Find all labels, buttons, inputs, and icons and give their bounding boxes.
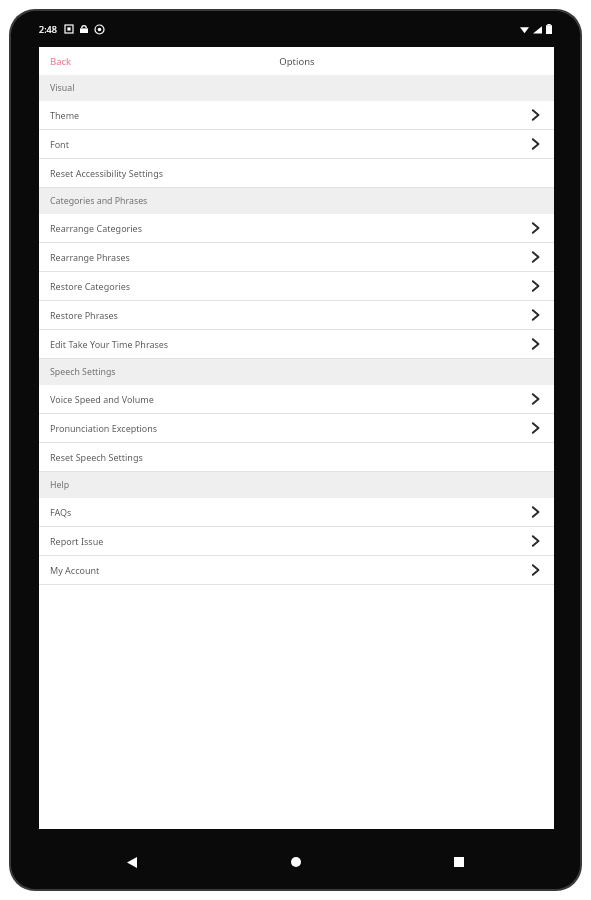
button[interactable]: Font [39,130,554,158]
staticText: 2:48 [39,23,57,35]
other: Open Voice Speed and Volume [532,393,539,405]
button[interactable]: My Account [39,556,554,584]
other: Open My Account [532,564,539,576]
other: Open Font [532,138,539,150]
staticText: Options [279,55,315,68]
staticText: Restore Phrases [50,309,118,321]
staticText: My Account [50,564,100,576]
button[interactable]: Rearrange Categories [39,214,554,242]
staticText: Speech Settings [50,366,116,378]
button[interactable]: Home [283,849,309,875]
button[interactable]: FAQs [39,498,554,526]
button[interactable]: Restore Phrases [39,301,554,329]
button[interactable]: Theme [39,101,554,129]
staticText: Voice Speed and Volume [50,393,154,405]
button[interactable]: Back [39,51,82,72]
staticText: Report Issue [50,535,104,547]
other: Open Restore Categories [532,280,539,292]
other: Open Edit Take Your Time Phrases [532,338,539,350]
staticText: Font [50,138,69,150]
button[interactable]: Back [119,849,145,875]
other: Open Pronunciation Exceptions [532,422,539,434]
staticText: Reset Accessibility Settings [50,167,163,179]
staticText: Pronunciation Exceptions [50,422,158,434]
button[interactable]: Voice Speed and Volume [39,385,554,413]
button[interactable]: Rearrange Phrases [39,243,554,271]
other: Open Theme [532,109,539,121]
other: Open FAQs [532,506,539,518]
other: Open Restore Phrases [532,309,539,321]
other: Open Rearrange Categories [532,222,539,234]
staticText: Reset Speech Settings [50,451,143,463]
staticText: Rearrange Categories [50,222,143,234]
button[interactable]: Reset Speech Settings [39,443,554,471]
staticText: Edit Take Your Time Phrases [50,338,169,350]
button[interactable]: Edit Take Your Time Phrases [39,330,554,358]
staticText: Theme [50,109,80,121]
button[interactable]: Reset Accessibility Settings [39,159,554,187]
staticText: Rearrange Phrases [50,251,130,263]
other: Open Report Issue [532,535,539,547]
button[interactable]: Pronunciation Exceptions [39,414,554,442]
staticText: Visual [50,82,75,94]
staticText: FAQs [50,506,72,518]
staticText: Back [50,55,72,68]
staticText: Restore Categories [50,280,131,292]
other: Open Rearrange Phrases [532,251,539,263]
button[interactable]: Recent apps [446,849,472,875]
button[interactable]: Report Issue [39,527,554,555]
button[interactable]: Restore Categories [39,272,554,300]
staticText: Help [50,479,70,491]
staticText: Categories and Phrases [50,195,148,207]
